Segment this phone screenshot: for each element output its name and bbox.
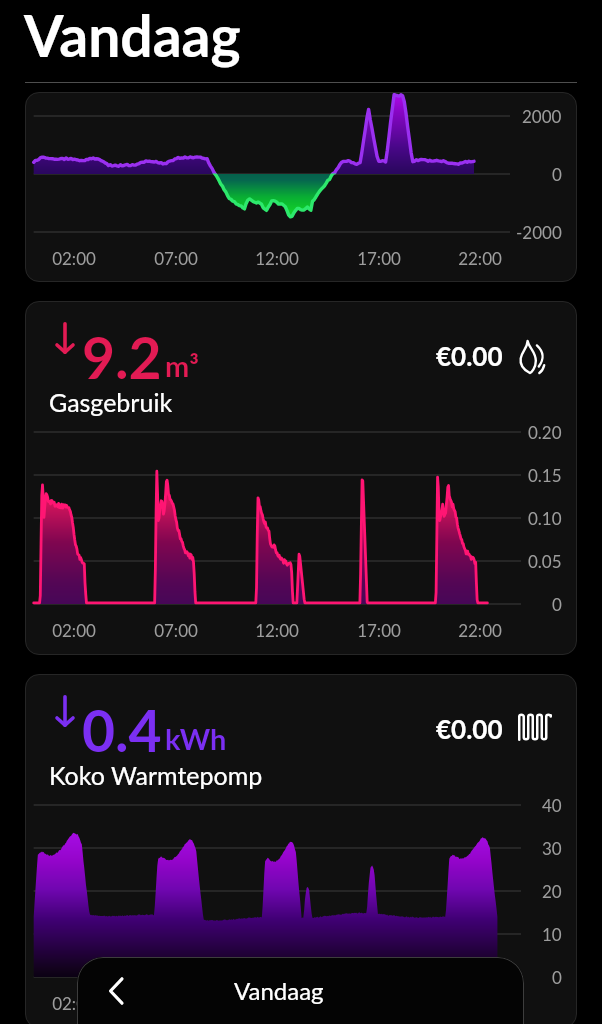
staticText: 0.20 bbox=[528, 422, 562, 442]
staticText: m³ bbox=[165, 348, 199, 383]
staticText: 17:00 bbox=[357, 248, 401, 268]
staticText: 0.4 bbox=[82, 696, 162, 764]
staticText: €0.00 bbox=[436, 340, 503, 371]
staticText: 17:00 bbox=[357, 620, 401, 640]
staticText: €0.00 bbox=[436, 713, 503, 744]
staticText: 0.15 bbox=[528, 465, 562, 485]
staticText: 40 bbox=[542, 795, 562, 815]
button[interactable]: Terug bbox=[92, 967, 140, 1015]
staticText: 02:00 bbox=[52, 993, 96, 1013]
staticText: 0 bbox=[552, 164, 562, 184]
staticText: Vandaag bbox=[24, 1, 241, 69]
other: Warmtepomp bbox=[518, 713, 552, 741]
staticText: 9.2 bbox=[82, 323, 162, 391]
staticText: 12:00 bbox=[255, 993, 299, 1013]
staticText: 30 bbox=[542, 838, 562, 858]
staticText: 20 bbox=[542, 881, 562, 901]
button[interactable]: Vandaag bbox=[234, 976, 324, 1005]
button[interactable]: €0.00 bbox=[436, 713, 503, 744]
staticText: kWh bbox=[165, 721, 227, 756]
button[interactable]: Vandaag bbox=[24, 1, 241, 69]
staticText: Vandaag bbox=[234, 976, 324, 1005]
staticText: 22:00 bbox=[458, 248, 502, 268]
staticText: 10 bbox=[542, 924, 562, 944]
staticText: 07:00 bbox=[154, 248, 198, 268]
staticText: -2000 bbox=[516, 222, 562, 242]
staticText: 02:00 bbox=[52, 248, 96, 268]
staticText: 12:00 bbox=[255, 248, 299, 268]
staticText: Gasgebruik bbox=[49, 387, 173, 417]
staticText: 0 bbox=[552, 594, 562, 614]
button[interactable]: 0.4 bbox=[25, 674, 577, 1024]
staticText: 07:00 bbox=[154, 620, 198, 640]
staticText: Koko Warmtepomp bbox=[49, 760, 263, 790]
staticText: 02:00 bbox=[52, 620, 96, 640]
staticText: 2000 bbox=[522, 106, 562, 126]
button[interactable]: 9.2 bbox=[25, 301, 577, 655]
staticText: 0.05 bbox=[528, 551, 562, 571]
button[interactable]: €0.00 bbox=[436, 340, 503, 371]
staticText: 0 bbox=[552, 967, 562, 987]
staticText: 22:00 bbox=[458, 620, 502, 640]
staticText: 0.10 bbox=[528, 508, 562, 528]
staticText: 12:00 bbox=[255, 620, 299, 640]
button[interactable]: 2000 bbox=[25, 92, 577, 282]
other: Gas bbox=[518, 340, 545, 374]
